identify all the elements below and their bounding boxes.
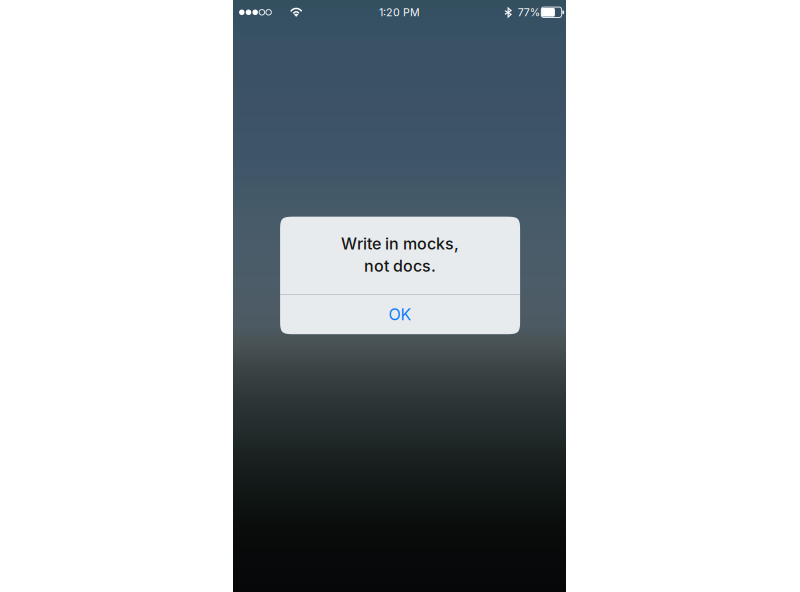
button[interactable]: OK [280, 295, 520, 334]
staticText: Write in mocks, [341, 234, 459, 253]
staticText: OK [389, 305, 412, 324]
staticText: 77% [518, 6, 540, 19]
staticText: not docs. [364, 256, 436, 276]
staticText: 1:20 PM [379, 6, 420, 19]
